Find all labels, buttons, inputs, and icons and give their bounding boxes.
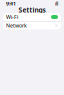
staticText: 9:41 bbox=[6, 0, 16, 7]
staticText: Settings bbox=[18, 6, 45, 14]
staticText: Network bbox=[6, 22, 27, 29]
staticText: ıll bbox=[55, 0, 58, 7]
staticText: Wi-Fi bbox=[6, 13, 18, 21]
staticText: > bbox=[55, 22, 58, 29]
